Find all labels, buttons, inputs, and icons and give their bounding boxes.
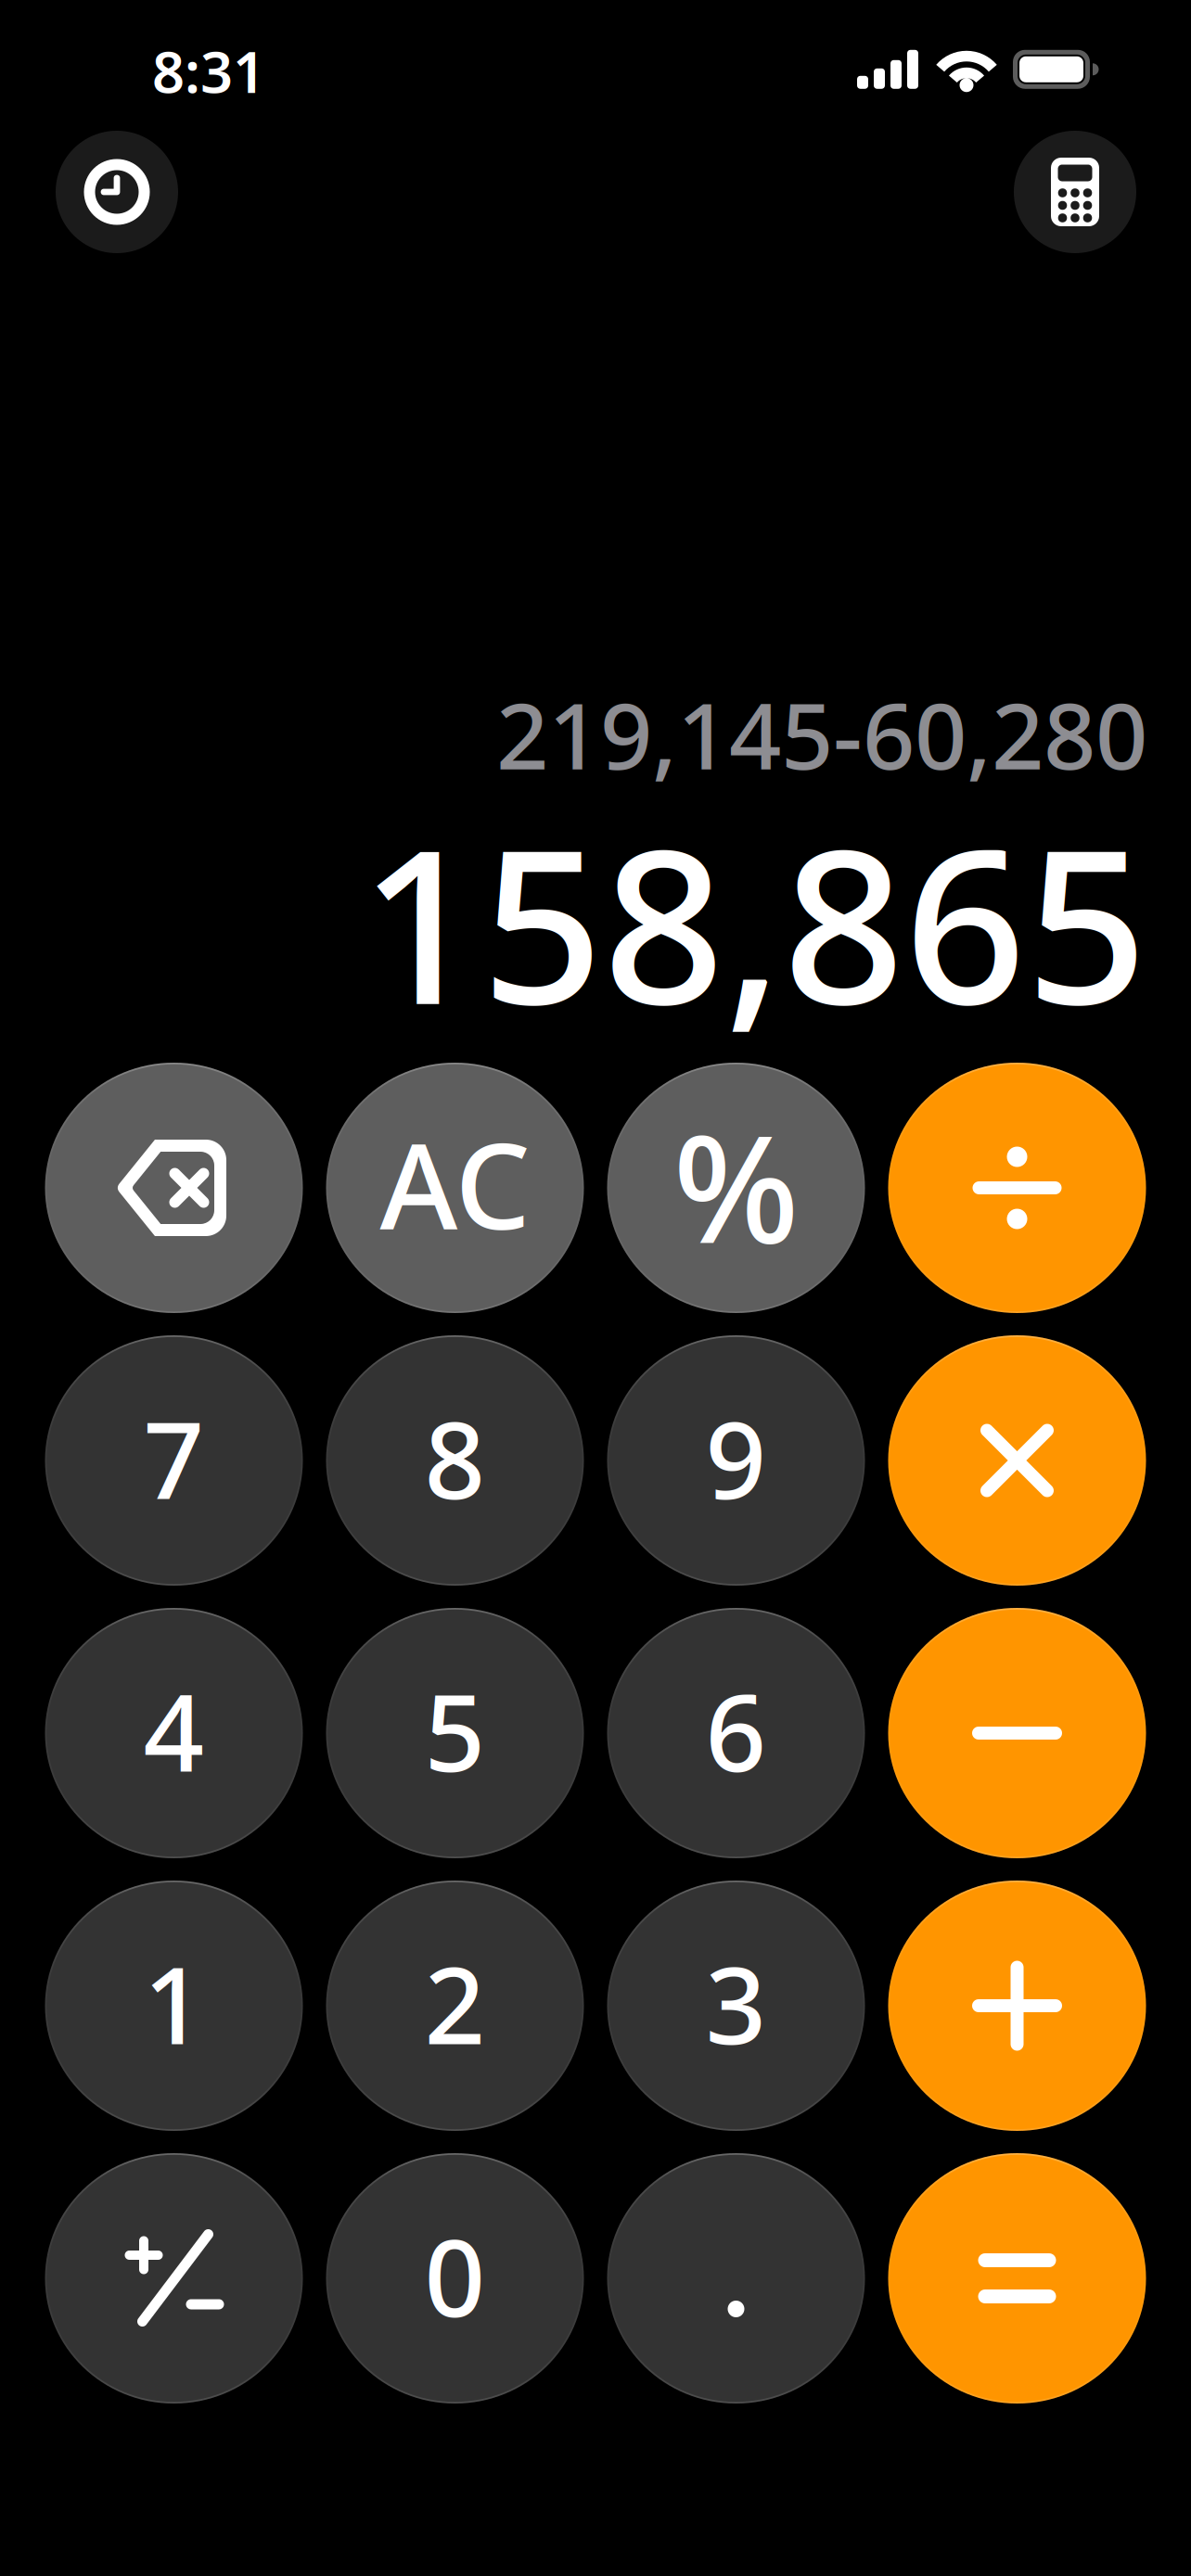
button[interactable]: Toggle sign [45,2153,303,2404]
button[interactable]: Multiply [888,1335,1146,1586]
button[interactable]: 3 [607,1881,865,2131]
button[interactable]: 1 [45,1881,303,2131]
button[interactable]: 5 [326,1608,584,1858]
button[interactable]: Equals [888,2153,1146,2404]
staticText: 219,145-60,280 [496,673,1147,795]
button[interactable]: 7 [45,1335,303,1586]
staticText: 4 [143,1660,205,1801]
button[interactable]: Plus [888,1881,1146,2131]
button[interactable]: 8 [326,1335,584,1586]
button[interactable]: 6 [607,1608,865,1858]
staticText: 3 [705,1932,767,2074]
button[interactable]: Decimal point [607,2153,865,2404]
staticText: AC [380,1104,530,1262]
button[interactable]: 4 [45,1608,303,1858]
staticText: 8 [424,1387,486,1528]
staticText: 8:31 [152,33,265,109]
staticText: % [673,1087,799,1284]
staticText: 6 [705,1660,767,1801]
button[interactable]: History [56,131,178,253]
staticText: 5 [424,1660,486,1801]
button[interactable]: Minus [888,1608,1146,1858]
button[interactable]: Delete [45,1063,303,1313]
button[interactable]: 0 [326,2153,584,2404]
staticText: 7 [143,1387,205,1528]
button[interactable]: 2 [326,1881,584,2131]
button[interactable]: Calculator mode [1014,131,1136,253]
button[interactable]: 9 [607,1335,865,1586]
staticText: 9 [705,1387,767,1528]
button[interactable]: % [607,1063,865,1313]
staticText: 0 [424,2205,486,2346]
button[interactable]: Divide [888,1063,1146,1313]
staticText: 2 [424,1932,486,2074]
button[interactable]: AC [326,1063,584,1313]
staticText: 1 [143,1932,205,2074]
staticText: 158,865 [360,780,1147,1063]
